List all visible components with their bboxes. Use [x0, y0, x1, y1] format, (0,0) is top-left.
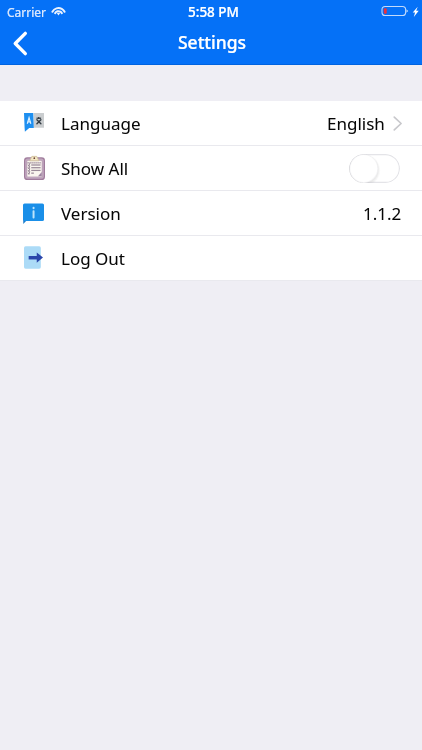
staticText: Show All	[61, 157, 129, 180]
staticText: 1.1.2	[363, 202, 402, 225]
staticText: 5:58 PM	[188, 3, 239, 21]
staticText: English	[327, 112, 385, 135]
button[interactable]: Language	[0, 101, 422, 145]
button[interactable]	[349, 154, 400, 183]
button[interactable]: Show All	[0, 146, 422, 190]
staticText: Language	[61, 112, 141, 135]
button[interactable]: Version	[0, 191, 422, 235]
staticText: Log Out	[61, 247, 125, 270]
staticText: English	[327, 112, 385, 135]
staticText: Show All	[61, 157, 129, 180]
staticText: Carrier	[7, 4, 47, 20]
staticText: Log Out	[61, 247, 125, 270]
staticText: 1.1.2	[363, 202, 402, 225]
button[interactable]: Back	[0, 24, 40, 65]
staticText: Settings	[178, 30, 247, 54]
staticText: Version	[61, 202, 121, 225]
staticText: Language	[61, 112, 141, 135]
staticText: Version	[61, 202, 121, 225]
button[interactable]: Log Out	[0, 236, 422, 280]
